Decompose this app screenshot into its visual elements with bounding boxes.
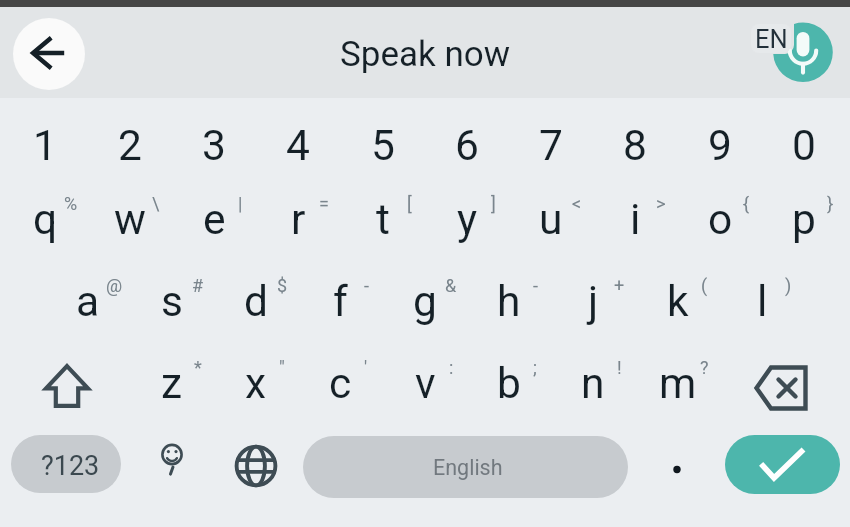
button[interactable]: x: [214, 332, 298, 418]
staticText: >: [656, 193, 666, 214]
button[interactable]: n: [551, 332, 635, 418]
button[interactable]: Microphone: [735, 7, 850, 98]
staticText: 2: [118, 121, 142, 171]
button[interactable]: y: [425, 168, 509, 254]
staticText: %: [64, 193, 78, 214]
staticText: r: [291, 195, 306, 245]
button[interactable]: Backspace: [719, 345, 845, 431]
staticText: |: [238, 193, 243, 214]
button[interactable]: q: [3, 168, 87, 254]
staticText: v: [415, 359, 436, 409]
staticText: !: [617, 357, 622, 378]
button[interactable]: k: [636, 250, 720, 336]
staticText: 6: [455, 121, 479, 171]
staticText: ;: [533, 357, 537, 378]
button[interactable]: c: [298, 332, 382, 418]
staticText: 1: [33, 121, 57, 171]
staticText: b: [497, 359, 521, 409]
staticText: -: [533, 275, 538, 296]
button[interactable]: l: [720, 250, 804, 336]
button[interactable]: Enter: [725, 435, 840, 494]
staticText: x: [245, 359, 267, 409]
button[interactable]: u: [509, 168, 593, 254]
button[interactable]: Emoji: [142, 431, 202, 501]
button[interactable]: t: [341, 168, 425, 254]
button[interactable]: h: [467, 250, 551, 336]
staticText: s: [161, 277, 183, 327]
button[interactable]: b: [467, 332, 551, 418]
staticText: English: [433, 455, 503, 480]
staticText: y: [457, 195, 478, 245]
staticText: :: [449, 357, 454, 378]
button[interactable]: 8: [593, 94, 677, 180]
staticText: ?: [700, 357, 709, 378]
staticText: 9: [708, 121, 732, 171]
staticText: o: [708, 195, 733, 245]
staticText: p: [792, 195, 816, 245]
button[interactable]: 0: [762, 94, 846, 180]
staticText: e: [203, 195, 226, 245]
button[interactable]: Shift: [4, 343, 130, 429]
button[interactable]: f: [298, 250, 382, 336]
staticText: q: [33, 195, 58, 245]
button[interactable]: d: [214, 250, 298, 336]
button[interactable]: Back: [13, 18, 85, 90]
staticText: 0: [792, 121, 816, 171]
staticText: j: [588, 277, 599, 327]
button[interactable]: 3: [172, 94, 256, 180]
button[interactable]: j: [551, 250, 635, 336]
staticText: k: [667, 277, 689, 327]
staticText: g: [413, 277, 437, 327]
staticText: i: [630, 195, 641, 245]
button[interactable]: w: [88, 168, 172, 254]
staticText: t: [376, 195, 390, 245]
button[interactable]: s: [130, 250, 214, 336]
button[interactable]: English: [303, 436, 628, 498]
button[interactable]: i: [593, 168, 677, 254]
button[interactable]: 5: [341, 94, 425, 180]
button[interactable]: 6: [425, 94, 509, 180]
button[interactable]: e: [172, 168, 256, 254]
staticText: 3: [202, 121, 226, 171]
staticText: 7: [539, 121, 563, 171]
staticText: #: [192, 275, 204, 296]
staticText: $: [277, 275, 288, 296]
staticText: a: [76, 277, 100, 327]
button[interactable]: 7: [509, 94, 593, 180]
staticText: ?123: [41, 450, 100, 482]
staticText: EN: [755, 24, 788, 53]
button[interactable]: m: [636, 332, 720, 418]
staticText: ': [364, 357, 368, 378]
staticText: &: [445, 275, 457, 296]
button[interactable]: 9: [678, 94, 762, 180]
staticText: [: [407, 193, 412, 214]
staticText: w: [114, 195, 146, 245]
staticText: 4: [286, 121, 310, 171]
button[interactable]: 2: [88, 94, 172, 180]
staticText: *: [194, 357, 202, 378]
button[interactable]: r: [256, 168, 340, 254]
button[interactable]: p: [762, 168, 846, 254]
button[interactable]: g: [383, 250, 467, 336]
staticText: l: [757, 277, 768, 327]
button[interactable]: 1: [3, 94, 87, 180]
staticText: <: [572, 193, 582, 214]
button[interactable]: 4: [256, 94, 340, 180]
staticText: c: [329, 359, 352, 409]
staticText: }: [827, 193, 834, 214]
button[interactable]: Change language: [226, 431, 286, 501]
button[interactable]: EN: [751, 24, 791, 53]
button[interactable]: v: [383, 332, 467, 418]
staticText: u: [539, 195, 563, 245]
staticText: 5: [371, 121, 395, 171]
staticText: -: [364, 275, 369, 296]
staticText: m: [659, 359, 697, 409]
staticText: \: [152, 193, 160, 214]
button[interactable]: o: [678, 168, 762, 254]
button[interactable]: z: [130, 332, 214, 418]
staticText: h: [497, 277, 521, 327]
button[interactable]: Period: [653, 435, 701, 497]
button[interactable]: ?123: [11, 435, 121, 493]
button[interactable]: a: [46, 250, 130, 336]
staticText: Speak now: [0, 34, 850, 75]
